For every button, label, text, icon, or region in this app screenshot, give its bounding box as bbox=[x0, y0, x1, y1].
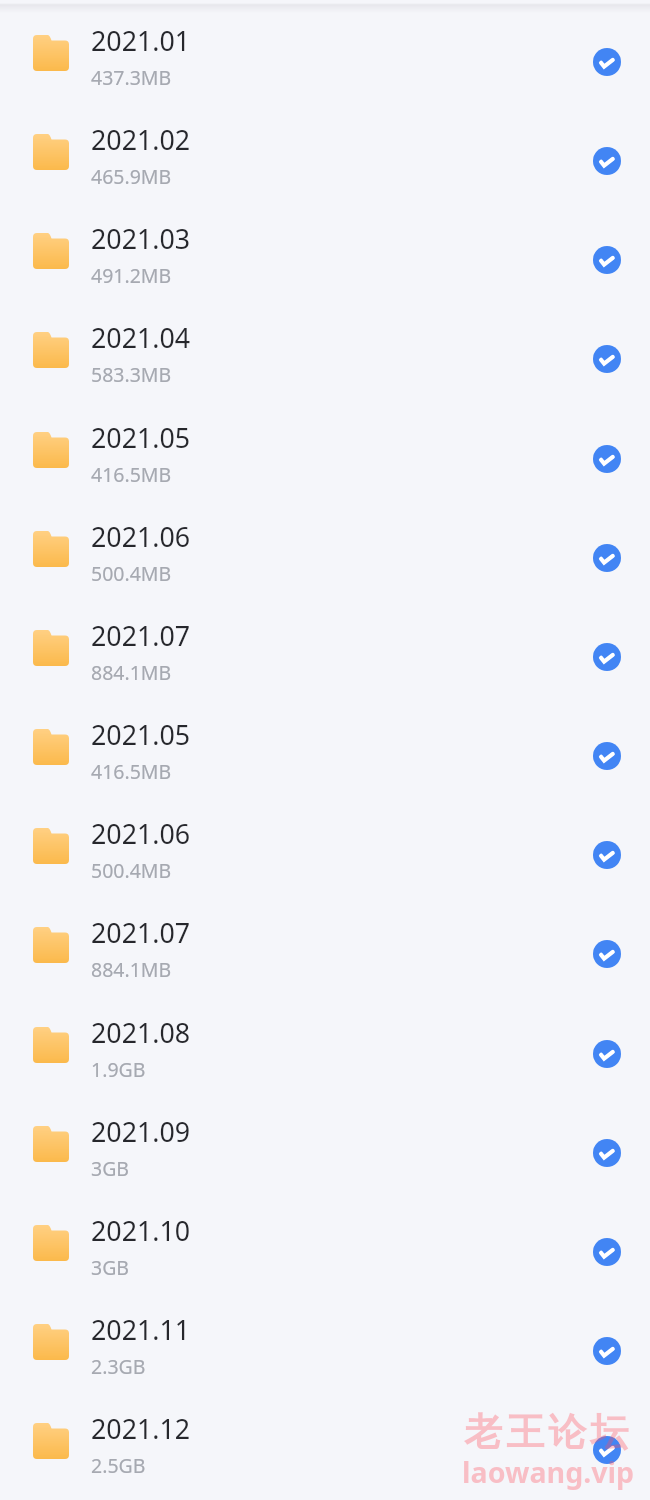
button[interactable]: 2021.05 bbox=[0, 694, 650, 793]
button[interactable]: 2021.07 bbox=[0, 595, 650, 694]
staticText: 437.3MB bbox=[91, 64, 172, 91]
staticText: 2021.04 bbox=[91, 319, 191, 356]
button[interactable]: Selected bbox=[593, 246, 621, 274]
button[interactable]: Selected bbox=[593, 940, 621, 968]
button[interactable]: Selected bbox=[593, 345, 621, 373]
staticText: 3GB bbox=[91, 1254, 130, 1281]
staticText: 2.5GB bbox=[91, 1452, 146, 1479]
button[interactable]: 2021.09 bbox=[0, 1091, 650, 1190]
button[interactable]: Selected bbox=[593, 147, 621, 175]
staticText: 2021.12 bbox=[91, 1410, 191, 1447]
button[interactable]: 2021.03 bbox=[0, 198, 650, 297]
staticText: 2021.01 bbox=[91, 22, 191, 59]
button[interactable]: 2021.02 bbox=[0, 99, 650, 198]
staticText: 884.1MB bbox=[91, 659, 172, 686]
button[interactable]: Selected bbox=[593, 1436, 621, 1464]
staticText: 2021.07 bbox=[91, 617, 191, 654]
staticText: 2021.06 bbox=[91, 518, 191, 555]
staticText: 1.9GB bbox=[91, 1056, 146, 1083]
staticText: 2021.05 bbox=[91, 716, 191, 753]
button[interactable]: Selected bbox=[593, 1040, 621, 1068]
staticText: 2021.09 bbox=[91, 1113, 191, 1150]
button[interactable]: 2021.08 bbox=[0, 992, 650, 1091]
button[interactable]: 2021.10 bbox=[0, 1190, 650, 1289]
button[interactable]: 2021.12 bbox=[0, 1388, 650, 1487]
staticText: 500.4MB bbox=[91, 560, 172, 587]
button[interactable]: Selected bbox=[593, 445, 621, 473]
staticText: 老王论坛 bbox=[464, 1408, 633, 1456]
button[interactable]: Selected bbox=[593, 841, 621, 869]
button[interactable]: Selected bbox=[593, 1139, 621, 1167]
button[interactable]: 2021.11 bbox=[0, 1289, 650, 1388]
staticText: 2.3GB bbox=[91, 1353, 146, 1380]
button[interactable]: 2021.05 bbox=[0, 397, 650, 496]
staticText: 2021.08 bbox=[91, 1014, 191, 1051]
button[interactable]: 2021.06 bbox=[0, 793, 650, 892]
staticText: laowang.vip bbox=[462, 1452, 635, 1491]
staticText: 583.3MB bbox=[91, 361, 172, 388]
staticText: 884.1MB bbox=[91, 956, 172, 983]
staticText: 491.2MB bbox=[91, 262, 172, 289]
button[interactable]: 2021.01 bbox=[0, 0, 650, 99]
staticText: 3GB bbox=[91, 1155, 130, 1182]
button[interactable]: Selected bbox=[593, 1337, 621, 1365]
button[interactable]: 2021.04 bbox=[0, 297, 650, 396]
staticText: 2021.10 bbox=[91, 1212, 191, 1249]
staticText: 2021.02 bbox=[91, 121, 191, 158]
staticText: 500.4MB bbox=[91, 857, 172, 884]
staticText: 2021.06 bbox=[91, 815, 191, 852]
button[interactable]: Selected bbox=[593, 1238, 621, 1266]
staticText: 2021.05 bbox=[91, 419, 191, 456]
button[interactable]: Selected bbox=[593, 643, 621, 671]
staticText: 2021.11 bbox=[91, 1311, 191, 1348]
button[interactable]: Selected bbox=[593, 742, 621, 770]
staticText: 2021.03 bbox=[91, 220, 191, 257]
staticText: 416.5MB bbox=[91, 461, 172, 488]
button[interactable]: 2021.06 bbox=[0, 496, 650, 595]
staticText: 416.5MB bbox=[91, 758, 172, 785]
button[interactable]: Selected bbox=[593, 48, 621, 76]
staticText: 465.9MB bbox=[91, 163, 172, 190]
button[interactable]: Selected bbox=[593, 544, 621, 572]
staticText: 2021.07 bbox=[91, 914, 191, 951]
button[interactable]: 2021.07 bbox=[0, 892, 650, 991]
